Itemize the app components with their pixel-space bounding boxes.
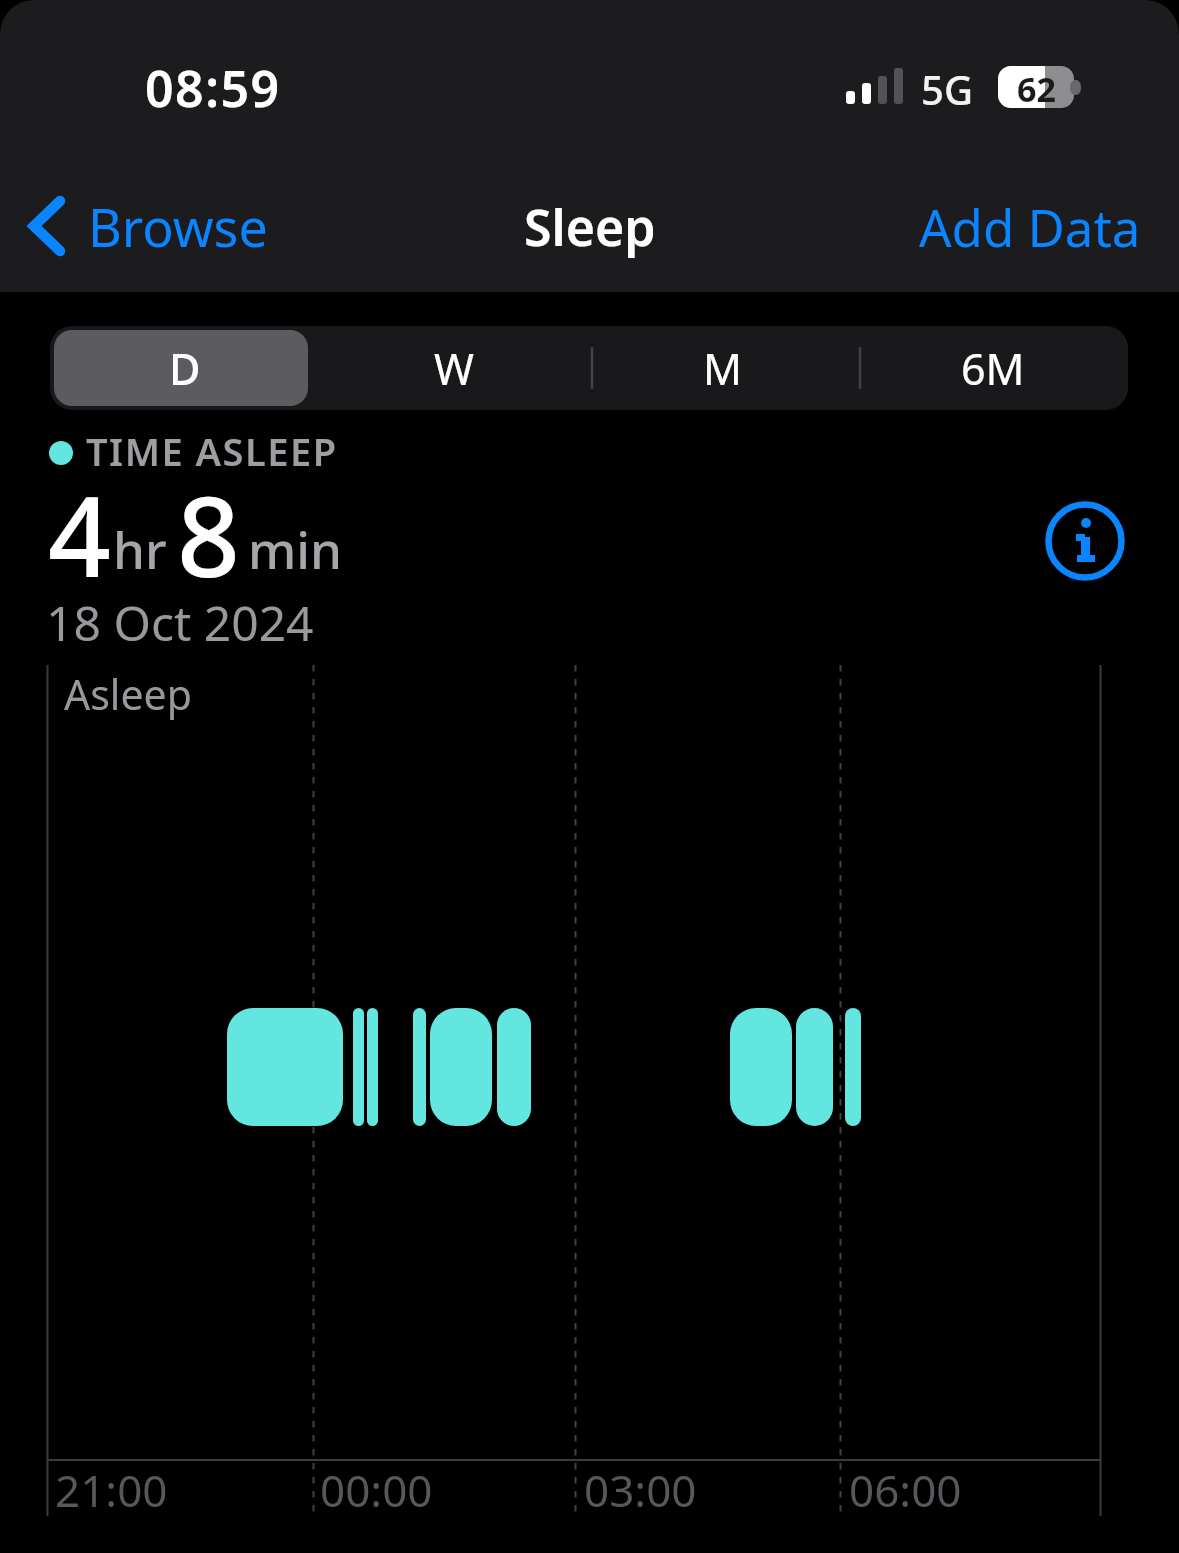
button[interactable]: 6M xyxy=(858,326,1128,410)
staticText: Sleep xyxy=(524,193,656,261)
staticText: hr xyxy=(113,514,167,583)
button[interactable]: Browse xyxy=(18,186,278,266)
staticText: 00:00 xyxy=(320,1460,433,1520)
staticText: 08:59 xyxy=(145,54,281,122)
staticText: 03:00 xyxy=(584,1460,697,1520)
staticText: 62 xyxy=(1017,66,1056,108)
staticText: 4 xyxy=(48,459,111,609)
staticText: Browse xyxy=(88,191,268,262)
staticText: 18 Oct 2024 xyxy=(46,590,314,655)
staticText: 21:00 xyxy=(55,1460,168,1520)
button[interactable]: W xyxy=(319,326,588,410)
staticText: 06:00 xyxy=(849,1460,962,1520)
staticText: 5G xyxy=(921,62,973,116)
staticText: M xyxy=(703,339,743,398)
button[interactable]: Add Data xyxy=(912,186,1142,266)
staticText: 6M xyxy=(961,339,1025,398)
staticText: W xyxy=(434,339,474,398)
staticText: min xyxy=(248,514,343,583)
button[interactable]: D xyxy=(50,326,319,410)
staticText: Asleep xyxy=(64,666,192,722)
button[interactable]: M xyxy=(588,326,858,410)
staticText: D xyxy=(169,339,201,398)
button[interactable] xyxy=(1044,500,1126,582)
staticText: Add Data xyxy=(919,192,1141,261)
staticText: TIME ASLEEP xyxy=(86,425,338,477)
staticText: 8 xyxy=(177,459,240,609)
